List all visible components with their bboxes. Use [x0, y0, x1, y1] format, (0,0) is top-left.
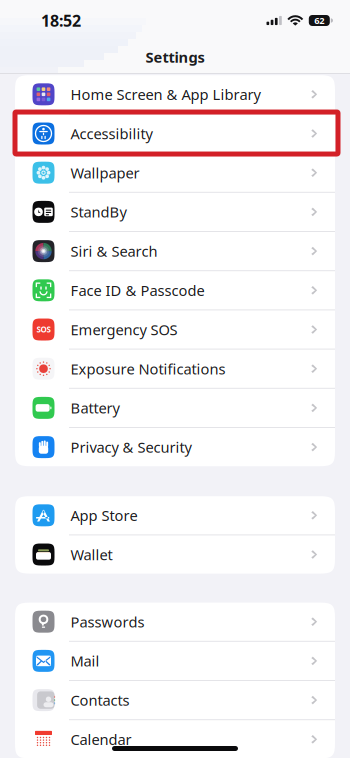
button[interactable]: Passwords — [15, 603, 335, 641]
button[interactable]: Accessibility — [15, 114, 335, 153]
staticText: Calendar — [70, 730, 131, 749]
staticText: Passwords — [70, 612, 144, 631]
staticText: Settings — [145, 47, 204, 67]
button[interactable]: SOS — [15, 310, 335, 349]
staticText: Accessibility — [70, 124, 152, 143]
staticText: SOS — [36, 324, 50, 335]
staticText: StandBy — [70, 202, 126, 222]
staticText: Home Screen & App Library — [70, 85, 260, 104]
button[interactable]: Contacts — [15, 681, 335, 719]
staticText: Wallet — [70, 545, 112, 564]
button[interactable]: App Store — [15, 496, 335, 534]
button[interactable]: Wallet — [15, 535, 335, 574]
staticText: App Store — [70, 506, 137, 525]
staticText: 18:52 — [41, 10, 81, 31]
button[interactable]: Exposure Notifications — [15, 350, 335, 388]
staticText: Privacy & Security — [70, 437, 191, 457]
staticText: 62 — [314, 14, 324, 27]
button[interactable]: Calendar — [15, 720, 335, 758]
staticText: Siri & Search — [70, 241, 157, 261]
staticText: Battery — [70, 398, 119, 418]
button[interactable]: Mail — [15, 642, 335, 680]
button[interactable]: Face ID & Passcode — [15, 271, 335, 309]
staticText: Exposure Notifications — [70, 359, 225, 378]
button[interactable]: Privacy & Security — [15, 428, 335, 466]
button[interactable]: Wallpaper — [15, 154, 335, 192]
button[interactable]: Siri & Search — [15, 232, 335, 270]
button[interactable]: Home Screen & App Library — [15, 75, 335, 113]
button[interactable]: StandBy — [15, 193, 335, 231]
staticText: Wallpaper — [70, 163, 139, 182]
staticText: Face ID & Passcode — [70, 281, 204, 300]
staticText: Emergency SOS — [70, 320, 177, 339]
staticText: Contacts — [70, 690, 129, 710]
staticText: Mail — [70, 651, 99, 671]
button[interactable]: Battery — [15, 389, 335, 427]
